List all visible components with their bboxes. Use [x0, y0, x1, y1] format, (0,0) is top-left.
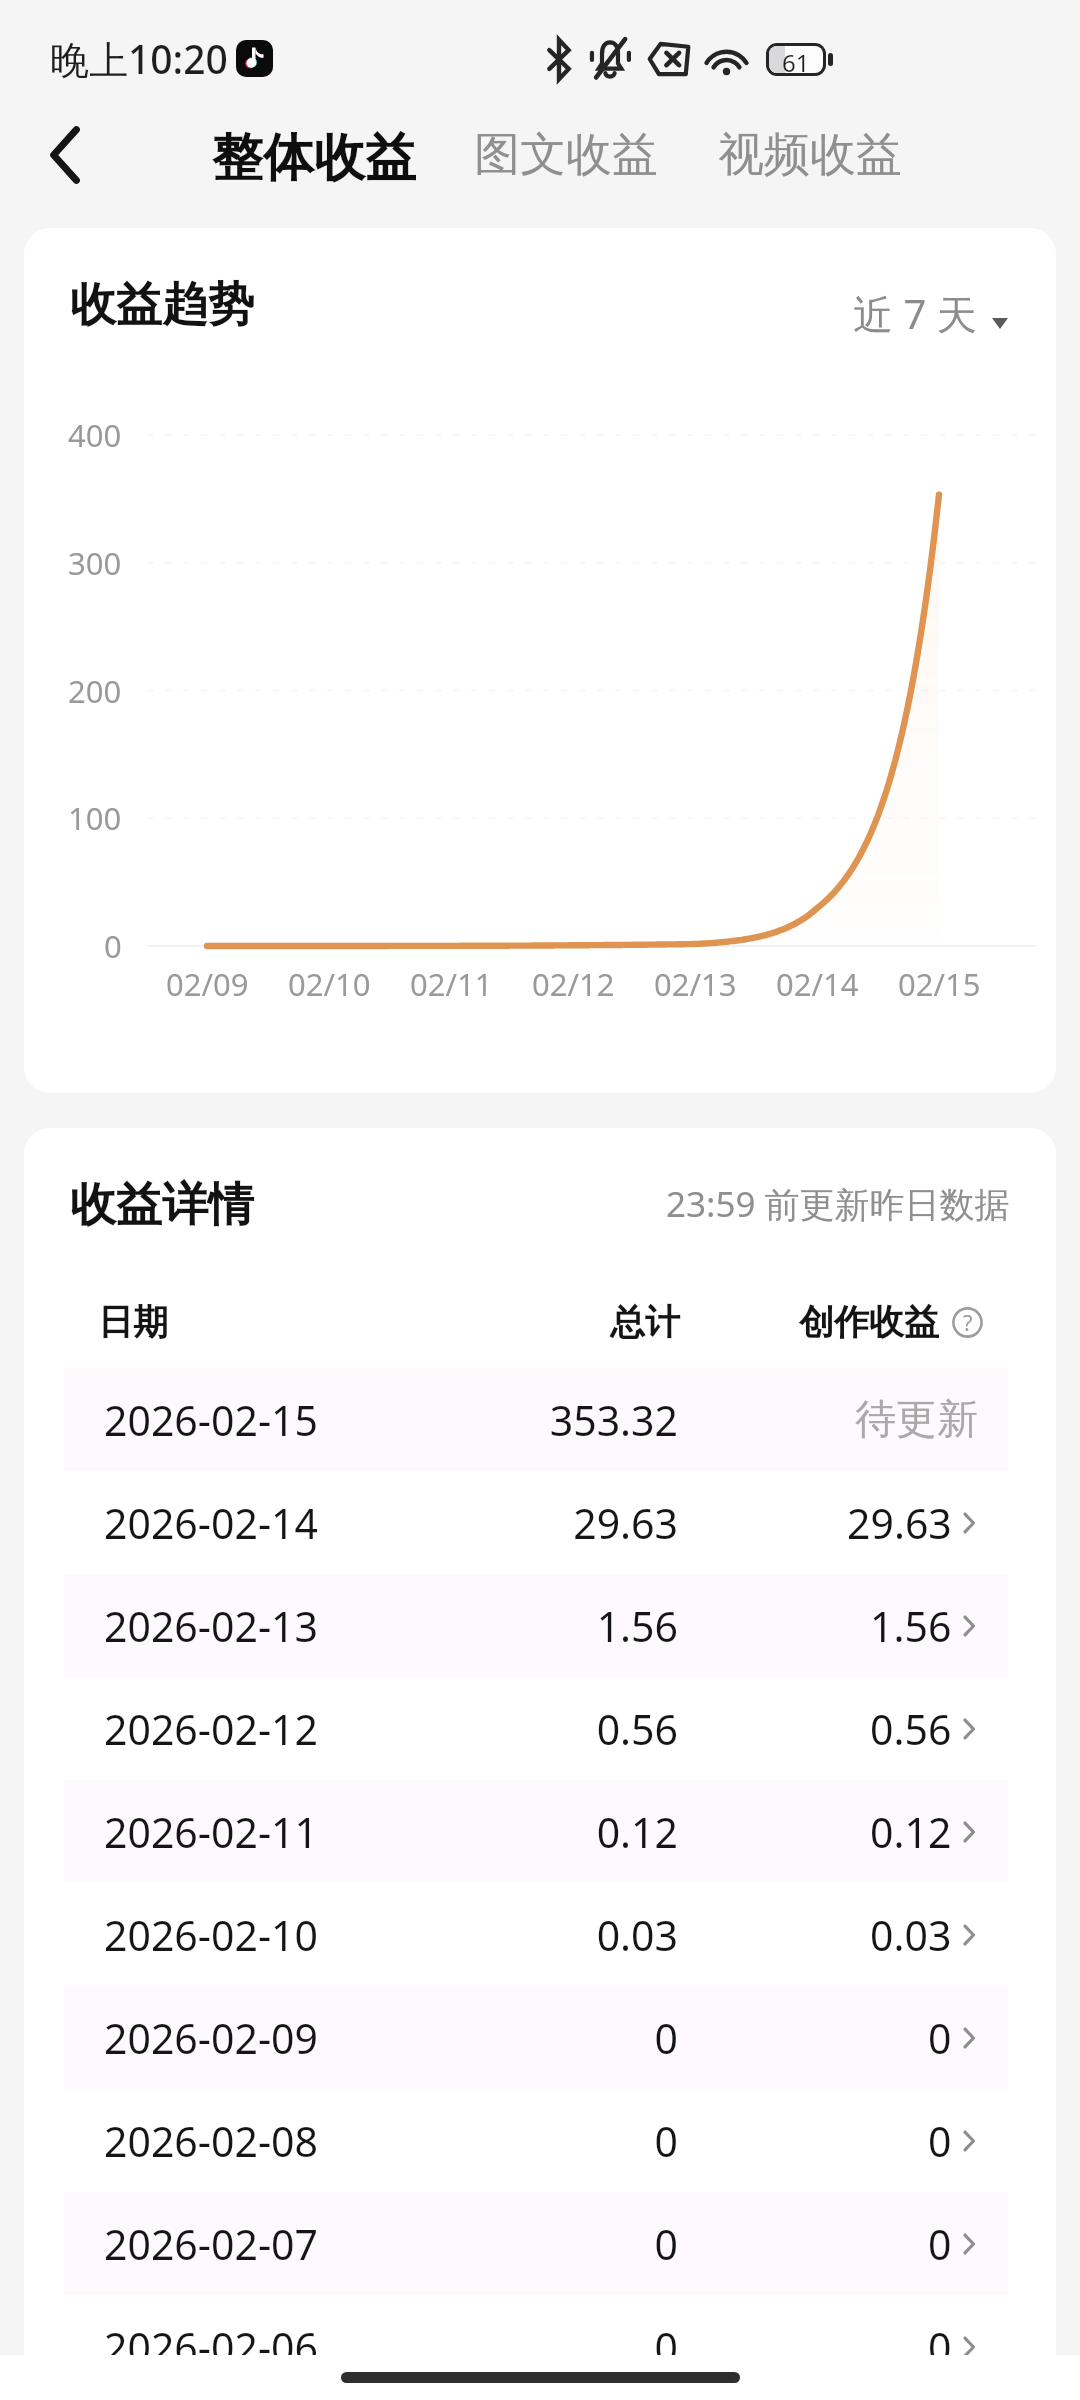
staticText: 0	[928, 2319, 952, 2375]
staticText: 创作收益	[799, 1300, 939, 1344]
button[interactable]: 2026-02-06	[64, 2295, 1008, 2398]
staticText: 1.56	[474, 1598, 678, 1654]
button[interactable]: 近 7 天	[845, 269, 1016, 340]
staticText: 0.12	[870, 1804, 952, 1860]
staticText: 2026-02-15	[104, 1392, 474, 1448]
staticText: 0	[474, 2216, 678, 2272]
staticText: 02/11	[410, 963, 493, 1005]
staticText: 晚上10:20	[50, 32, 228, 85]
staticText: 2026-02-11	[104, 1804, 474, 1860]
staticText: 视频收益	[718, 126, 902, 184]
button[interactable]: 2026-02-14	[64, 1471, 1008, 1574]
staticText: 0	[928, 2010, 952, 2066]
staticText: 0	[104, 925, 122, 967]
staticText: ?	[963, 1307, 973, 1337]
button[interactable]: 整体收益	[208, 112, 420, 198]
staticText: 2026-02-07	[104, 2216, 474, 2272]
button[interactable]: 2026-02-13	[64, 1574, 1008, 1677]
staticText: 29.63	[474, 1495, 678, 1551]
staticText: 总计	[468, 1300, 680, 1344]
staticText: 0.12	[474, 1804, 678, 1860]
staticText: 2026-02-08	[104, 2113, 474, 2169]
staticText: 0.56	[474, 1701, 678, 1757]
staticText: 2026-02-09	[104, 2010, 474, 2066]
staticText: 02/10	[288, 963, 371, 1005]
button[interactable]: 2026-02-07	[64, 2192, 1008, 2295]
staticText: 收益详情	[70, 1176, 254, 1234]
staticText: 图文收益	[474, 126, 658, 184]
button[interactable]: 视频收益	[714, 112, 906, 198]
staticText: 23:59 前更新昨日数据	[666, 1180, 1010, 1228]
staticText: 0.03	[870, 1907, 952, 1963]
staticText: 0	[928, 2113, 952, 2169]
staticText: 02/14	[776, 963, 859, 1005]
staticText: 200	[68, 670, 122, 712]
staticText: 日期	[98, 1300, 468, 1344]
button[interactable]: 2026-02-11	[64, 1780, 1008, 1883]
staticText: 收益趋势	[70, 276, 254, 334]
staticText: 0	[474, 2113, 678, 2169]
staticText: 02/09	[166, 963, 249, 1005]
staticText: 0	[928, 2216, 952, 2272]
staticText: 353.32	[474, 1392, 678, 1448]
staticText: 300	[68, 542, 122, 584]
staticText: 02/15	[898, 963, 981, 1005]
button[interactable]: 2026-02-15	[64, 1368, 1008, 1471]
staticText: 400	[68, 414, 122, 456]
button[interactable]: 2026-02-12	[64, 1677, 1008, 1780]
staticText: 0.03	[474, 1907, 678, 1963]
button[interactable]: 说明	[952, 1307, 983, 1338]
staticText: 29.63	[847, 1495, 952, 1551]
staticText: 2026-02-14	[104, 1495, 474, 1551]
staticText: 0	[474, 2319, 678, 2375]
staticText: 2026-02-13	[104, 1598, 474, 1654]
staticText: 2026-02-10	[104, 1907, 474, 1963]
staticText: 61	[782, 46, 810, 73]
button[interactable]: 2026-02-09	[64, 1986, 1008, 2089]
staticText: 2026-02-12	[104, 1701, 474, 1757]
staticText: 近 7 天	[853, 286, 977, 341]
staticText: 100	[68, 797, 122, 839]
button[interactable]: 2026-02-08	[64, 2089, 1008, 2192]
button[interactable]: 2026-02-10	[64, 1883, 1008, 1986]
staticText: 1.56	[870, 1598, 952, 1654]
button[interactable]: 返回	[20, 112, 110, 198]
staticText: 02/13	[654, 963, 737, 1005]
staticText: 0	[474, 2010, 678, 2066]
staticText: 2026-02-06	[104, 2319, 474, 2375]
staticText: 02/12	[532, 963, 615, 1005]
button[interactable]: 图文收益	[470, 112, 662, 198]
staticText: 0.56	[870, 1701, 952, 1757]
staticText: 整体收益	[212, 126, 416, 184]
staticText: 待更新	[855, 1394, 978, 1446]
